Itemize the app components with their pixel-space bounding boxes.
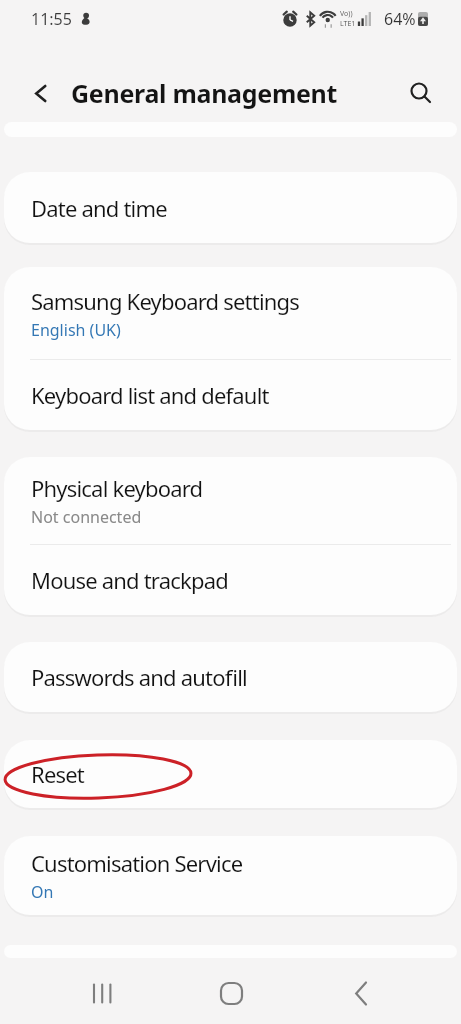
staticText: Reset [31,759,84,789]
staticText: Customisation Service [31,848,243,878]
button[interactable] [403,75,439,111]
staticText: 11:55 [31,8,72,30]
staticText: General management [71,76,338,110]
staticText: Date and time [31,193,167,223]
button[interactable] [213,975,249,1011]
staticText: Physical keyboard [31,473,203,503]
staticText: Vo)) [340,9,353,19]
staticText: Keyboard list and default [31,380,269,410]
staticText: English (UK) [31,319,121,341]
button[interactable] [24,76,58,110]
button[interactable]: Date and time [4,172,457,243]
button[interactable]: Samsung Keyboard settings [4,267,457,359]
staticText: 64% [384,8,416,30]
button[interactable]: Mouse and trackpad [4,545,457,615]
staticText: Not connected [31,506,142,528]
button[interactable]: Passwords and autofill [4,642,457,712]
button[interactable] [84,975,120,1011]
staticText: Samsung Keyboard settings [31,286,300,316]
button[interactable] [343,975,379,1011]
button[interactable]: Physical keyboard [4,457,457,544]
staticText: Mouse and trackpad [31,565,228,595]
button[interactable]: Reset [4,740,457,808]
staticText: LTE1 [340,19,356,29]
staticText: On [31,881,54,903]
button[interactable]: Customisation Service [4,836,457,915]
staticText: Passwords and autofill [31,662,247,692]
button[interactable]: Keyboard list and default [4,360,457,430]
